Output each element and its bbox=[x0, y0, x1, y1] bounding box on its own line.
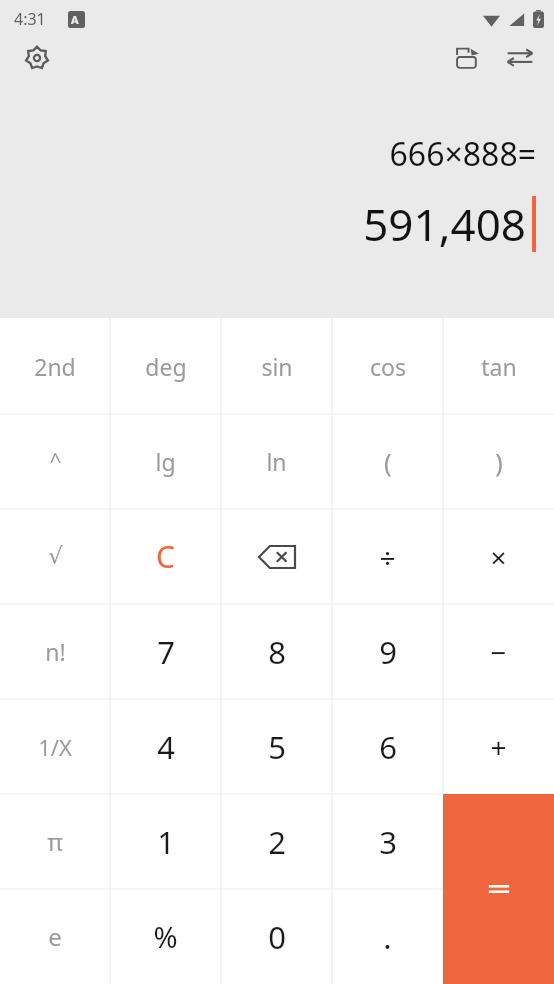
button[interactable]: 3 bbox=[332, 794, 443, 889]
staticText: − bbox=[490, 633, 507, 671]
staticText: tan bbox=[481, 351, 517, 382]
button[interactable]: ÷ bbox=[332, 509, 443, 604]
staticText: . bbox=[383, 916, 392, 958]
button[interactable]: 1/X bbox=[0, 699, 110, 794]
button[interactable]: × bbox=[443, 509, 554, 604]
staticText: n! bbox=[45, 636, 66, 667]
button[interactable]: ln bbox=[221, 414, 332, 509]
staticText: 4:31 bbox=[14, 8, 46, 30]
staticText: 1/X bbox=[38, 732, 72, 762]
staticText: 0 bbox=[268, 916, 286, 958]
staticText: 2nd bbox=[34, 351, 76, 382]
staticText: % bbox=[153, 917, 178, 956]
staticText: 1 bbox=[157, 821, 175, 863]
button[interactable]: 2 bbox=[221, 794, 332, 889]
staticText: e bbox=[48, 920, 62, 953]
staticText: ÷ bbox=[379, 538, 396, 576]
staticText: 8 bbox=[268, 631, 286, 673]
staticText: ^ bbox=[49, 447, 62, 476]
staticText: A bbox=[71, 12, 79, 27]
button[interactable]: Backspace bbox=[221, 509, 332, 604]
staticText: 9 bbox=[379, 631, 397, 673]
staticText: 2 bbox=[268, 821, 286, 863]
button[interactable]: 7 bbox=[110, 604, 221, 699]
button[interactable]: ( bbox=[332, 414, 443, 509]
staticText: + bbox=[490, 728, 507, 766]
staticText: 666×888= bbox=[389, 132, 536, 176]
button[interactable]: Settings bbox=[12, 33, 62, 83]
staticText: sin bbox=[261, 351, 293, 382]
staticText: 4 bbox=[157, 726, 175, 768]
staticText: 7 bbox=[157, 631, 175, 673]
button[interactable]: . bbox=[332, 889, 443, 984]
button[interactable]: + bbox=[443, 699, 554, 794]
staticText: cos bbox=[370, 351, 406, 382]
staticText: ln bbox=[266, 446, 287, 477]
button[interactable]: 4 bbox=[110, 699, 221, 794]
button[interactable]: lg bbox=[110, 414, 221, 509]
staticText: ) bbox=[495, 444, 503, 479]
staticText: ( bbox=[384, 444, 392, 479]
button[interactable]: 5 bbox=[221, 699, 332, 794]
button[interactable]: e bbox=[0, 889, 110, 984]
staticText: 3 bbox=[379, 821, 397, 863]
staticText: × bbox=[490, 538, 507, 576]
other: Backspace bbox=[254, 534, 300, 580]
button[interactable]: C bbox=[110, 509, 221, 604]
button[interactable]: ) bbox=[443, 414, 554, 509]
button[interactable]: cos bbox=[332, 318, 443, 414]
button[interactable]: 6 bbox=[332, 699, 443, 794]
button[interactable]: 9 bbox=[332, 604, 443, 699]
button[interactable]: Unit converter bbox=[494, 32, 546, 84]
button[interactable]: ^ bbox=[0, 414, 110, 509]
button[interactable]: Rotate screen bbox=[442, 32, 494, 84]
staticText: 5 bbox=[268, 726, 286, 768]
staticText: 591,408 bbox=[363, 194, 526, 254]
button[interactable]: − bbox=[443, 604, 554, 699]
staticText: deg bbox=[145, 351, 187, 382]
button[interactable]: sin bbox=[221, 318, 332, 414]
staticText: 6 bbox=[379, 726, 397, 768]
staticText: C bbox=[156, 536, 175, 577]
button[interactable]: deg bbox=[110, 318, 221, 414]
button[interactable]: 0 bbox=[221, 889, 332, 984]
staticText: √ bbox=[48, 543, 63, 570]
button[interactable]: 8 bbox=[221, 604, 332, 699]
button[interactable]: 1 bbox=[110, 794, 221, 889]
staticText: π bbox=[47, 825, 63, 858]
button[interactable]: n! bbox=[0, 604, 110, 699]
button[interactable]: % bbox=[110, 889, 221, 984]
button[interactable]: tan bbox=[443, 318, 554, 414]
button[interactable]: 2nd bbox=[0, 318, 110, 414]
staticText: lg bbox=[155, 446, 176, 477]
button[interactable]: √ bbox=[0, 509, 110, 604]
button[interactable]: π bbox=[0, 794, 110, 889]
button[interactable] bbox=[443, 794, 554, 984]
